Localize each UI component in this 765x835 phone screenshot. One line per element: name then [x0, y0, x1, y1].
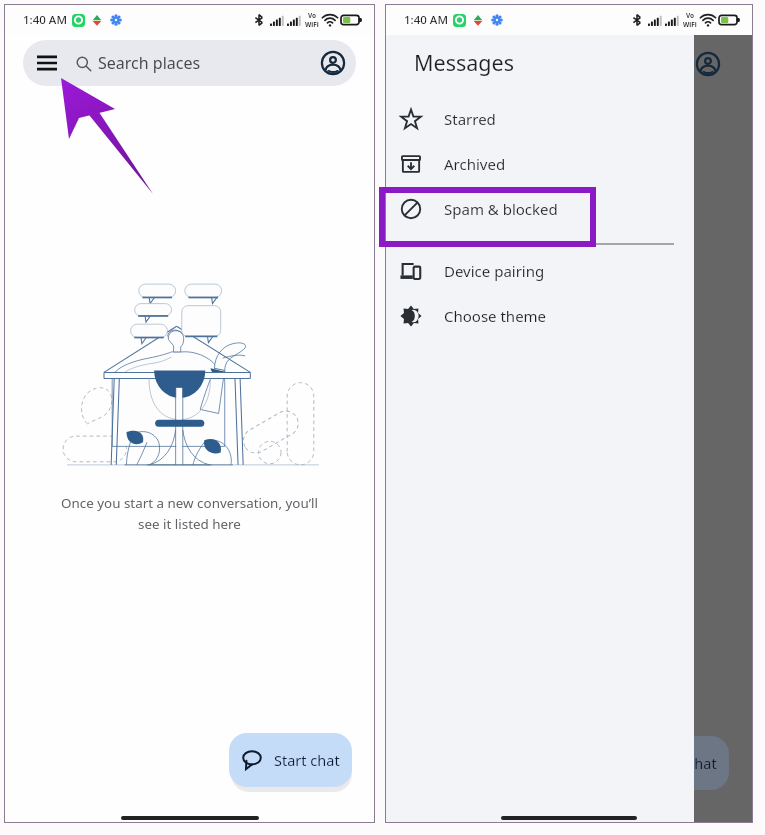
button[interactable]: Open navigation menu [37, 55, 57, 71]
staticText: Once you start a new conversation, you’l… [5, 494, 374, 533]
staticText: Start chat [651, 753, 717, 773]
button[interactable]: Spam & blocked [386, 186, 694, 231]
staticText: Archived [444, 154, 506, 174]
staticText: Vo [308, 11, 317, 20]
button[interactable]: Open navigation menu [23, 40, 356, 86]
staticText: 1:40 AM [23, 12, 67, 28]
staticText: Device pairing [444, 261, 545, 281]
staticText: Choose theme [444, 306, 547, 326]
staticText: Vo [686, 11, 695, 20]
staticText: Messages [414, 48, 514, 77]
button[interactable]: Start chat [229, 733, 352, 787]
button[interactable]: Starred [386, 96, 694, 141]
staticText: WiFi [305, 20, 319, 29]
staticText: Starred [444, 109, 496, 129]
button[interactable]: Choose theme [386, 293, 694, 338]
button[interactable]: Device pairing [386, 248, 694, 293]
button[interactable]: Account [695, 51, 721, 77]
button[interactable]: Account [320, 50, 346, 76]
staticText: WiFi [683, 20, 697, 29]
button[interactable]: Start chat [606, 736, 729, 790]
staticText: 1:40 AM [404, 12, 448, 28]
button[interactable]: Archived [386, 141, 694, 186]
staticText: Search places [98, 52, 201, 74]
staticText: Spam & blocked [444, 199, 558, 219]
staticText: Start chat [274, 750, 340, 770]
